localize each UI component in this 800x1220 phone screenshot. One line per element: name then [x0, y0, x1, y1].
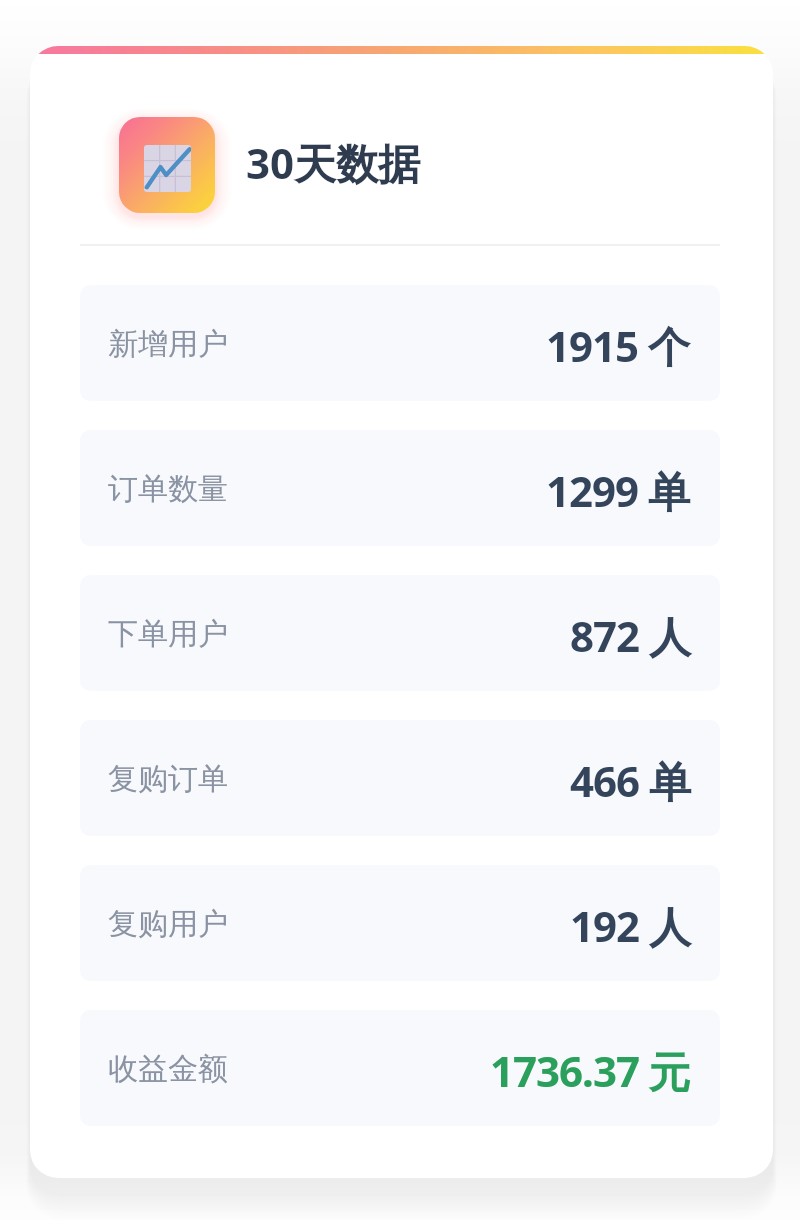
button[interactable]: 30天数据统计	[30, 117, 773, 213]
staticText: 收益金额	[108, 1050, 228, 1088]
staticText: 1915 个	[546, 317, 690, 374]
button[interactable]: 下单用户	[80, 575, 720, 691]
button[interactable]: 新增用户	[80, 285, 720, 401]
staticText: 192 人	[570, 897, 690, 954]
staticText: 复购订单	[108, 760, 228, 798]
staticText: 1736.37 元	[490, 1042, 690, 1099]
staticText: 30天数据	[246, 134, 421, 191]
other: 30天数据统计	[119, 117, 215, 213]
staticText: 订单数量	[108, 470, 228, 508]
button[interactable]: 复购用户	[80, 865, 720, 981]
staticText: 1299 单	[546, 462, 690, 519]
staticText: 新增用户	[108, 325, 228, 363]
staticText: 下单用户	[108, 615, 228, 653]
staticText: 复购用户	[108, 905, 228, 943]
staticText: 872 人	[570, 607, 690, 664]
staticText: 466 单	[570, 752, 690, 809]
button[interactable]: 复购订单	[80, 720, 720, 836]
button[interactable]: 收益金额	[80, 1010, 720, 1126]
button[interactable]: 订单数量	[80, 430, 720, 546]
